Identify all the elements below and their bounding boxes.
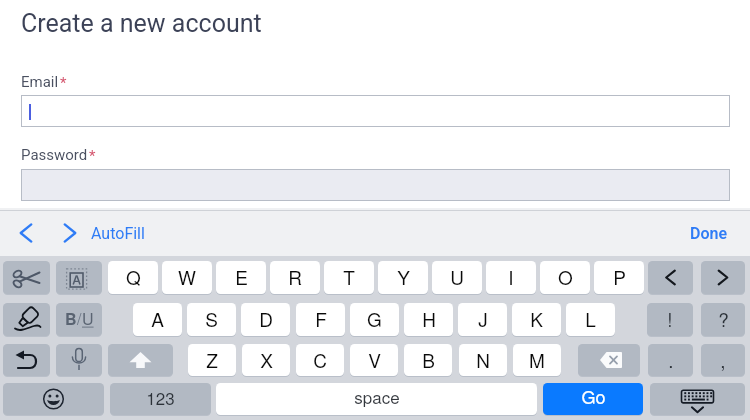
button[interactable]: Dictate (56, 344, 102, 376)
button[interactable]: Previous (648, 261, 693, 294)
staticText: * (60, 74, 67, 92)
staticText: T (343, 263, 355, 290)
staticText: D (259, 305, 273, 332)
button[interactable]: space (216, 383, 537, 415)
staticText: F (315, 305, 327, 332)
button[interactable]: ? (701, 303, 745, 336)
button[interactable]: Undo (3, 344, 50, 376)
button[interactable] (21, 169, 730, 201)
staticText: space (354, 384, 400, 408)
button[interactable]: U (432, 261, 482, 294)
button[interactable]: M (513, 344, 561, 376)
button[interactable]: X (242, 344, 290, 376)
staticText: Go (581, 383, 606, 409)
button[interactable]: Cut (3, 261, 50, 294)
staticText: I (508, 263, 514, 290)
staticText: Y (397, 263, 410, 290)
button[interactable]: T (324, 261, 374, 294)
button[interactable]: Go (543, 383, 643, 415)
button[interactable]: V (350, 344, 398, 376)
staticText: . (668, 346, 674, 373)
staticText: U (450, 263, 464, 290)
button[interactable]: G (350, 303, 399, 336)
button[interactable]: Hide keyboard (650, 383, 745, 415)
staticText: Z (206, 346, 218, 373)
button[interactable]: AutoFill (91, 219, 145, 247)
staticText: ! (667, 305, 673, 332)
staticText: A (151, 305, 164, 332)
button[interactable]: N (459, 344, 507, 376)
button[interactable]: A (133, 303, 182, 336)
button[interactable]: . (648, 344, 693, 376)
button[interactable]: 123 (110, 383, 211, 415)
staticText: Q (126, 263, 141, 290)
button[interactable]: B (404, 344, 452, 376)
button[interactable]: K (512, 303, 561, 336)
button[interactable]: I (486, 261, 536, 294)
staticText: ? (718, 305, 729, 332)
button[interactable]: O (540, 261, 590, 294)
button[interactable]: Shift (108, 344, 173, 376)
button[interactable]: Next field (56, 219, 84, 247)
button[interactable]: C (296, 344, 344, 376)
button[interactable]: Emoji (3, 383, 104, 415)
staticText: E (235, 263, 248, 290)
staticText: , (720, 346, 726, 373)
staticText: S (205, 305, 218, 332)
button[interactable]: D (241, 303, 290, 336)
button[interactable]: Q (108, 261, 158, 294)
button[interactable]: L (566, 303, 615, 336)
staticText: U (82, 307, 94, 330)
staticText: Create a new account (21, 9, 262, 38)
button[interactable]: Next (701, 261, 745, 294)
staticText: K (530, 305, 543, 332)
staticText: W (178, 263, 196, 290)
staticText: G (367, 305, 382, 332)
button[interactable]: , (701, 344, 745, 376)
staticText: X (260, 346, 273, 373)
button[interactable]: Backspace (578, 344, 640, 376)
button[interactable]: Highlight (3, 303, 50, 336)
button[interactable] (21, 95, 730, 127)
staticText: Done (690, 224, 728, 243)
staticText: P (613, 263, 626, 290)
button[interactable]: P (594, 261, 644, 294)
button[interactable]: W (162, 261, 212, 294)
button[interactable]: Format (56, 261, 102, 294)
staticText: N (476, 346, 490, 373)
staticText: R (288, 263, 302, 290)
button[interactable]: R (270, 261, 320, 294)
staticText: AutoFill (91, 224, 145, 243)
button[interactable]: Done (690, 219, 728, 247)
button[interactable]: S (187, 303, 236, 336)
button[interactable]: H (404, 303, 453, 336)
staticText: Password (21, 146, 88, 164)
button[interactable]: Bold italic underline (56, 303, 102, 336)
staticText: H (422, 305, 436, 332)
staticText: V (368, 346, 381, 373)
button[interactable]: J (458, 303, 507, 336)
staticText: B (422, 346, 435, 373)
button[interactable]: E (216, 261, 266, 294)
staticText: * (89, 147, 96, 165)
staticText: B (65, 307, 77, 330)
staticText: L (585, 305, 596, 332)
staticText: O (558, 263, 573, 290)
button[interactable]: Previous field (12, 219, 40, 247)
staticText: 123 (146, 385, 175, 409)
staticText: Email (21, 73, 59, 91)
button[interactable]: F (296, 303, 345, 336)
staticText: M (529, 346, 545, 373)
staticText: / (77, 307, 82, 330)
button[interactable]: Y (378, 261, 428, 294)
staticText: J (478, 305, 488, 332)
staticText: C (313, 346, 327, 373)
button[interactable]: Z (188, 344, 236, 376)
button[interactable]: ! (647, 303, 693, 336)
